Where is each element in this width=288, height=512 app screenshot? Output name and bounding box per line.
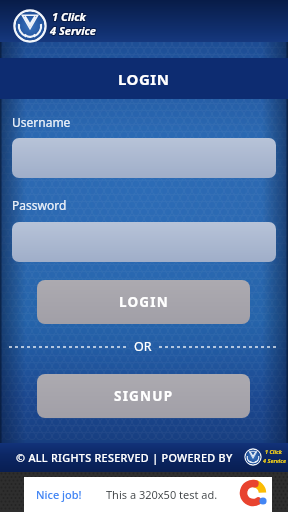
staticText: 1 Click bbox=[51, 8, 85, 23]
staticText: 4 Service bbox=[50, 22, 96, 37]
staticText: SIGNUP bbox=[114, 387, 174, 405]
staticText: 1 Click bbox=[53, 9, 87, 24]
button[interactable]: Nice job! bbox=[24, 477, 272, 512]
button[interactable] bbox=[12, 222, 276, 262]
staticText: 1 Click bbox=[53, 10, 87, 25]
staticText: Password bbox=[12, 197, 67, 213]
staticText: 4 Service bbox=[49, 23, 95, 38]
staticText: OR bbox=[134, 338, 152, 355]
staticText: 1 Click bbox=[52, 9, 86, 24]
staticText: © ALL RIGHTS RESERVED | POWERED BY bbox=[16, 450, 233, 465]
staticText: 4 Service bbox=[51, 24, 97, 39]
staticText: 1 Click bbox=[52, 10, 86, 25]
staticText: 4 Service bbox=[50, 23, 96, 38]
staticText: LOGIN bbox=[118, 69, 170, 89]
staticText: 1 Click bbox=[51, 10, 85, 25]
staticText: 4 Service bbox=[51, 23, 97, 38]
button[interactable]: SIGNUP bbox=[37, 374, 250, 418]
staticText: 1 Click bbox=[51, 9, 85, 24]
staticText: 4 Service bbox=[49, 22, 95, 37]
button[interactable]: LOGIN bbox=[37, 280, 250, 324]
staticText: Username bbox=[12, 114, 71, 130]
staticText: 1 Click bbox=[52, 8, 86, 23]
staticText: 4 Service bbox=[263, 457, 286, 464]
staticText: 4 Service bbox=[50, 24, 96, 39]
staticText: This a 320x50 test ad. bbox=[106, 487, 218, 502]
staticText: 1 Click bbox=[265, 448, 282, 455]
staticText: LOGIN bbox=[119, 293, 169, 311]
staticText: 1 Click bbox=[53, 8, 87, 23]
staticText: Nice job! bbox=[36, 487, 82, 502]
staticText: 4 Service bbox=[49, 24, 95, 39]
staticText: 4 Service bbox=[51, 22, 97, 37]
button[interactable] bbox=[12, 138, 276, 178]
